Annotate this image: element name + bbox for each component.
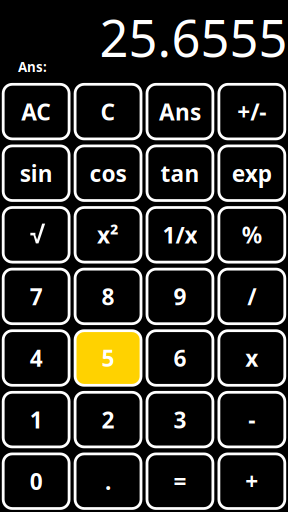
staticText: - [248, 404, 255, 435]
button[interactable]: 9 [147, 269, 213, 324]
button[interactable]: x [219, 331, 285, 385]
staticText: cos [90, 158, 127, 188]
staticText: / [247, 281, 256, 311]
staticText: x [245, 343, 258, 373]
staticText: = [173, 466, 186, 496]
staticText: 4 [30, 343, 43, 373]
staticText: 7 [30, 281, 43, 311]
staticText: + [245, 466, 258, 496]
staticText: tan [160, 158, 199, 188]
button[interactable]: = [147, 454, 213, 508]
button[interactable]: % [219, 207, 285, 262]
staticText: 25.6555 [99, 4, 287, 71]
button[interactable]: 1/x [147, 207, 213, 262]
staticText: % [242, 220, 262, 250]
staticText: C [101, 96, 116, 127]
staticText: Ans: [18, 58, 47, 76]
button[interactable]: 5 [75, 331, 141, 385]
button[interactable]: 6 [147, 331, 213, 385]
button[interactable]: Ans [147, 84, 213, 139]
staticText: 0 [30, 466, 43, 496]
staticText: AC [21, 96, 51, 127]
button[interactable]: - [219, 392, 285, 447]
staticText: +/- [237, 96, 266, 127]
button[interactable]: sin [3, 146, 69, 200]
staticText: exp [232, 158, 272, 188]
staticText: 9 [173, 281, 186, 311]
button[interactable]: 4 [3, 331, 69, 385]
button[interactable]: 1 [3, 392, 69, 447]
button[interactable]: 0 [3, 454, 69, 508]
staticText: 6 [173, 343, 186, 373]
staticText: . [105, 466, 111, 496]
staticText: 1 [30, 404, 43, 435]
staticText: 8 [102, 281, 115, 311]
button[interactable]: . [75, 454, 141, 508]
button[interactable]: / [219, 269, 285, 324]
button[interactable]: cos [75, 146, 141, 200]
button[interactable]: +/- [219, 84, 285, 139]
button[interactable]: tan [147, 146, 213, 200]
button[interactable]: AC [3, 84, 69, 139]
button[interactable]: Square root [3, 207, 69, 262]
staticText: 1/x [162, 220, 197, 250]
button[interactable]: exp [219, 146, 285, 200]
button[interactable]: 3 [147, 392, 213, 447]
staticText: sin [20, 158, 53, 188]
staticText: Ans [159, 96, 201, 127]
button[interactable]: 2 [75, 392, 141, 447]
staticText: x² [97, 220, 119, 250]
staticText: 3 [173, 404, 186, 435]
button[interactable]: 7 [3, 269, 69, 324]
button[interactable]: x² [75, 207, 141, 262]
staticText: 5 [102, 343, 115, 373]
button[interactable]: 8 [75, 269, 141, 324]
staticText: 2 [102, 404, 115, 435]
button[interactable]: + [219, 454, 285, 508]
button[interactable]: C [75, 84, 141, 139]
